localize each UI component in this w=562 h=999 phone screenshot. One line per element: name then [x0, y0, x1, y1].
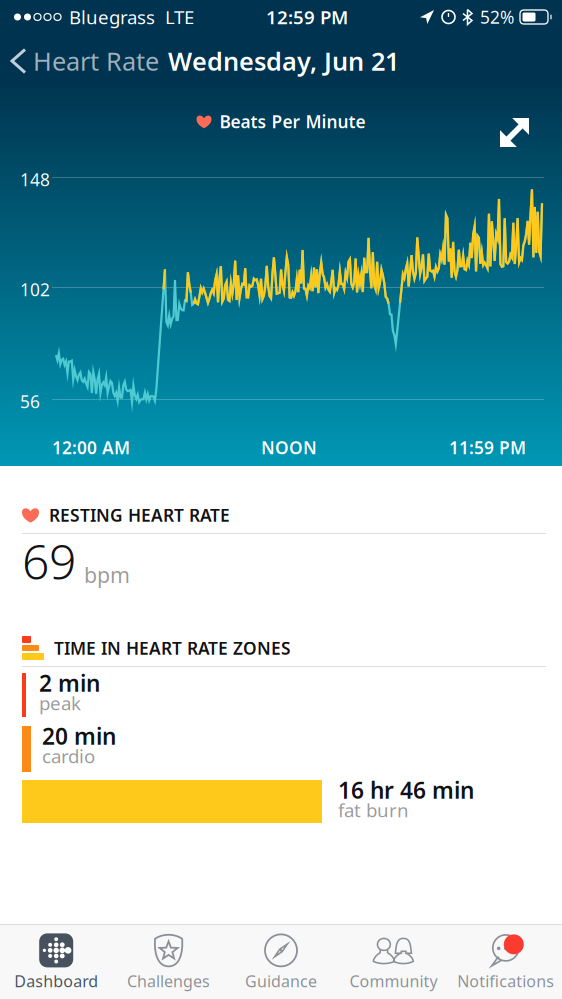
staticText: Dashboard [14, 970, 98, 992]
staticText: fat burn [338, 798, 409, 822]
button[interactable]: Heart Rate [0, 34, 168, 88]
staticText: TIME IN HEART RATE ZONES [54, 636, 291, 659]
staticText: 69 [22, 529, 76, 593]
staticText: NOON [261, 436, 317, 459]
button[interactable]: Notifications [450, 926, 562, 998]
staticText: Notifications [457, 970, 554, 992]
staticText: 148 [20, 168, 50, 191]
staticText: cardio [42, 744, 95, 768]
staticText: Bluegrass [69, 5, 155, 29]
staticText: LTE [165, 5, 194, 29]
staticText: 2 min [39, 668, 100, 698]
button[interactable]: Expand chart [490, 108, 539, 157]
staticText: 12:00 AM [52, 436, 130, 459]
staticText: Wednesday, Jun 21 [168, 44, 399, 78]
staticText: 12:59 PM [266, 5, 348, 29]
staticText: RESTING HEART RATE [49, 503, 230, 526]
staticText: 11:59 PM [449, 436, 526, 459]
staticText: Guidance [245, 970, 317, 992]
staticText: peak [39, 691, 81, 715]
staticText: Heart Rate [33, 44, 159, 78]
staticText: 102 [20, 278, 50, 301]
button[interactable]: Dashboard [0, 926, 112, 998]
button[interactable]: Guidance [225, 926, 337, 998]
staticText: 16 hr 46 min [338, 775, 474, 805]
staticText: Beats Per Minute [219, 110, 365, 133]
staticText: 56 [20, 390, 40, 413]
staticText: bpm [84, 560, 130, 589]
staticText: Challenges [127, 970, 210, 992]
staticText: 52% [480, 5, 514, 28]
staticText: 20 min [42, 721, 116, 751]
staticText: Community [349, 970, 437, 992]
button[interactable]: Community [337, 926, 450, 998]
button[interactable]: Challenges [112, 926, 225, 998]
